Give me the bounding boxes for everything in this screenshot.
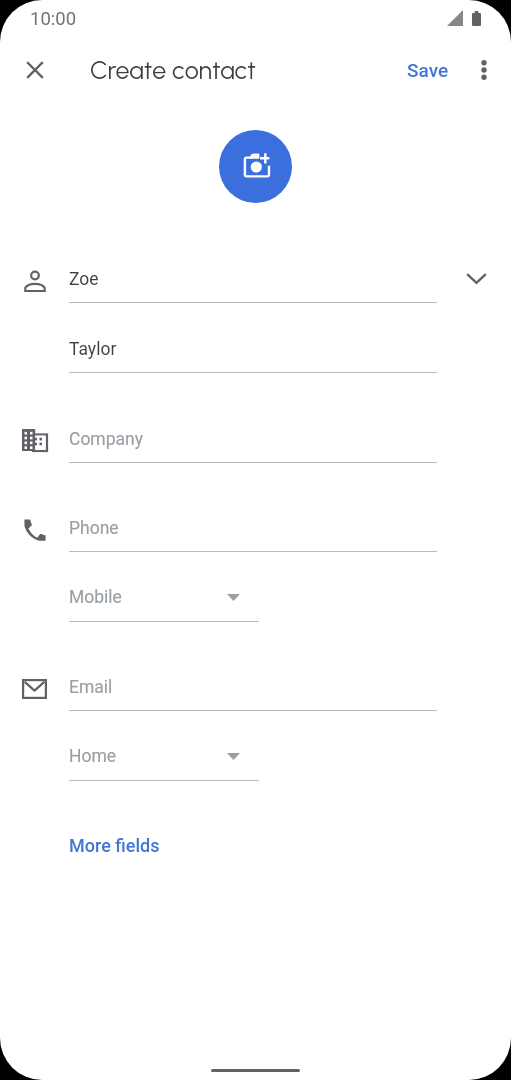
button[interactable]: More options: [461, 47, 506, 92]
staticText: Create contact: [90, 55, 256, 85]
button[interactable]: Expand name fields: [454, 256, 498, 300]
button[interactable]: Mobile: [69, 587, 259, 621]
button[interactable]: More fields: [60, 829, 169, 862]
staticText: 10:00: [30, 8, 77, 30]
staticText: More fields: [69, 835, 160, 856]
staticText: Mobile: [69, 587, 122, 608]
staticText: Save: [407, 59, 449, 81]
staticText: Zoe: [69, 269, 99, 290]
button[interactable]: Home: [69, 746, 259, 780]
staticText: Email: [69, 677, 113, 698]
staticText: Home: [69, 746, 117, 767]
staticText: Company: [69, 429, 144, 450]
staticText: Phone: [69, 518, 119, 539]
button[interactable]: Close: [12, 47, 57, 92]
staticText: Taylor: [69, 339, 117, 360]
button[interactable]: Save: [398, 53, 458, 87]
button[interactable]: Add photo: [219, 130, 292, 203]
